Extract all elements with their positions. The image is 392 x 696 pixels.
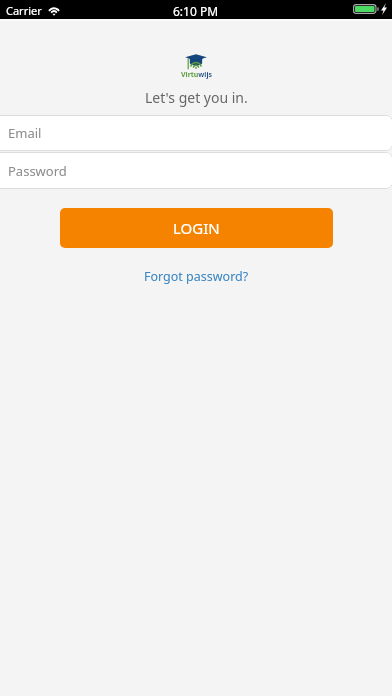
button[interactable]: Email	[0, 115, 392, 151]
staticText: Email	[8, 124, 42, 142]
staticText: Password	[8, 162, 67, 180]
staticText: Virtuwijs	[181, 70, 213, 80]
button[interactable]: Password	[0, 152, 392, 189]
button[interactable]: Forgot password?	[138, 264, 255, 289]
staticText: LOGIN	[173, 218, 220, 238]
staticText: Let's get you in.	[145, 88, 248, 107]
staticText: Forgot password?	[144, 268, 249, 285]
other: Charging	[381, 3, 387, 15]
button[interactable]: LOGIN	[60, 208, 333, 248]
staticText: 6:10 PM	[173, 3, 219, 19]
other: Battery	[353, 4, 379, 14]
other: Wi-Fi	[47, 5, 61, 14]
staticText: Carrier	[6, 3, 42, 18]
